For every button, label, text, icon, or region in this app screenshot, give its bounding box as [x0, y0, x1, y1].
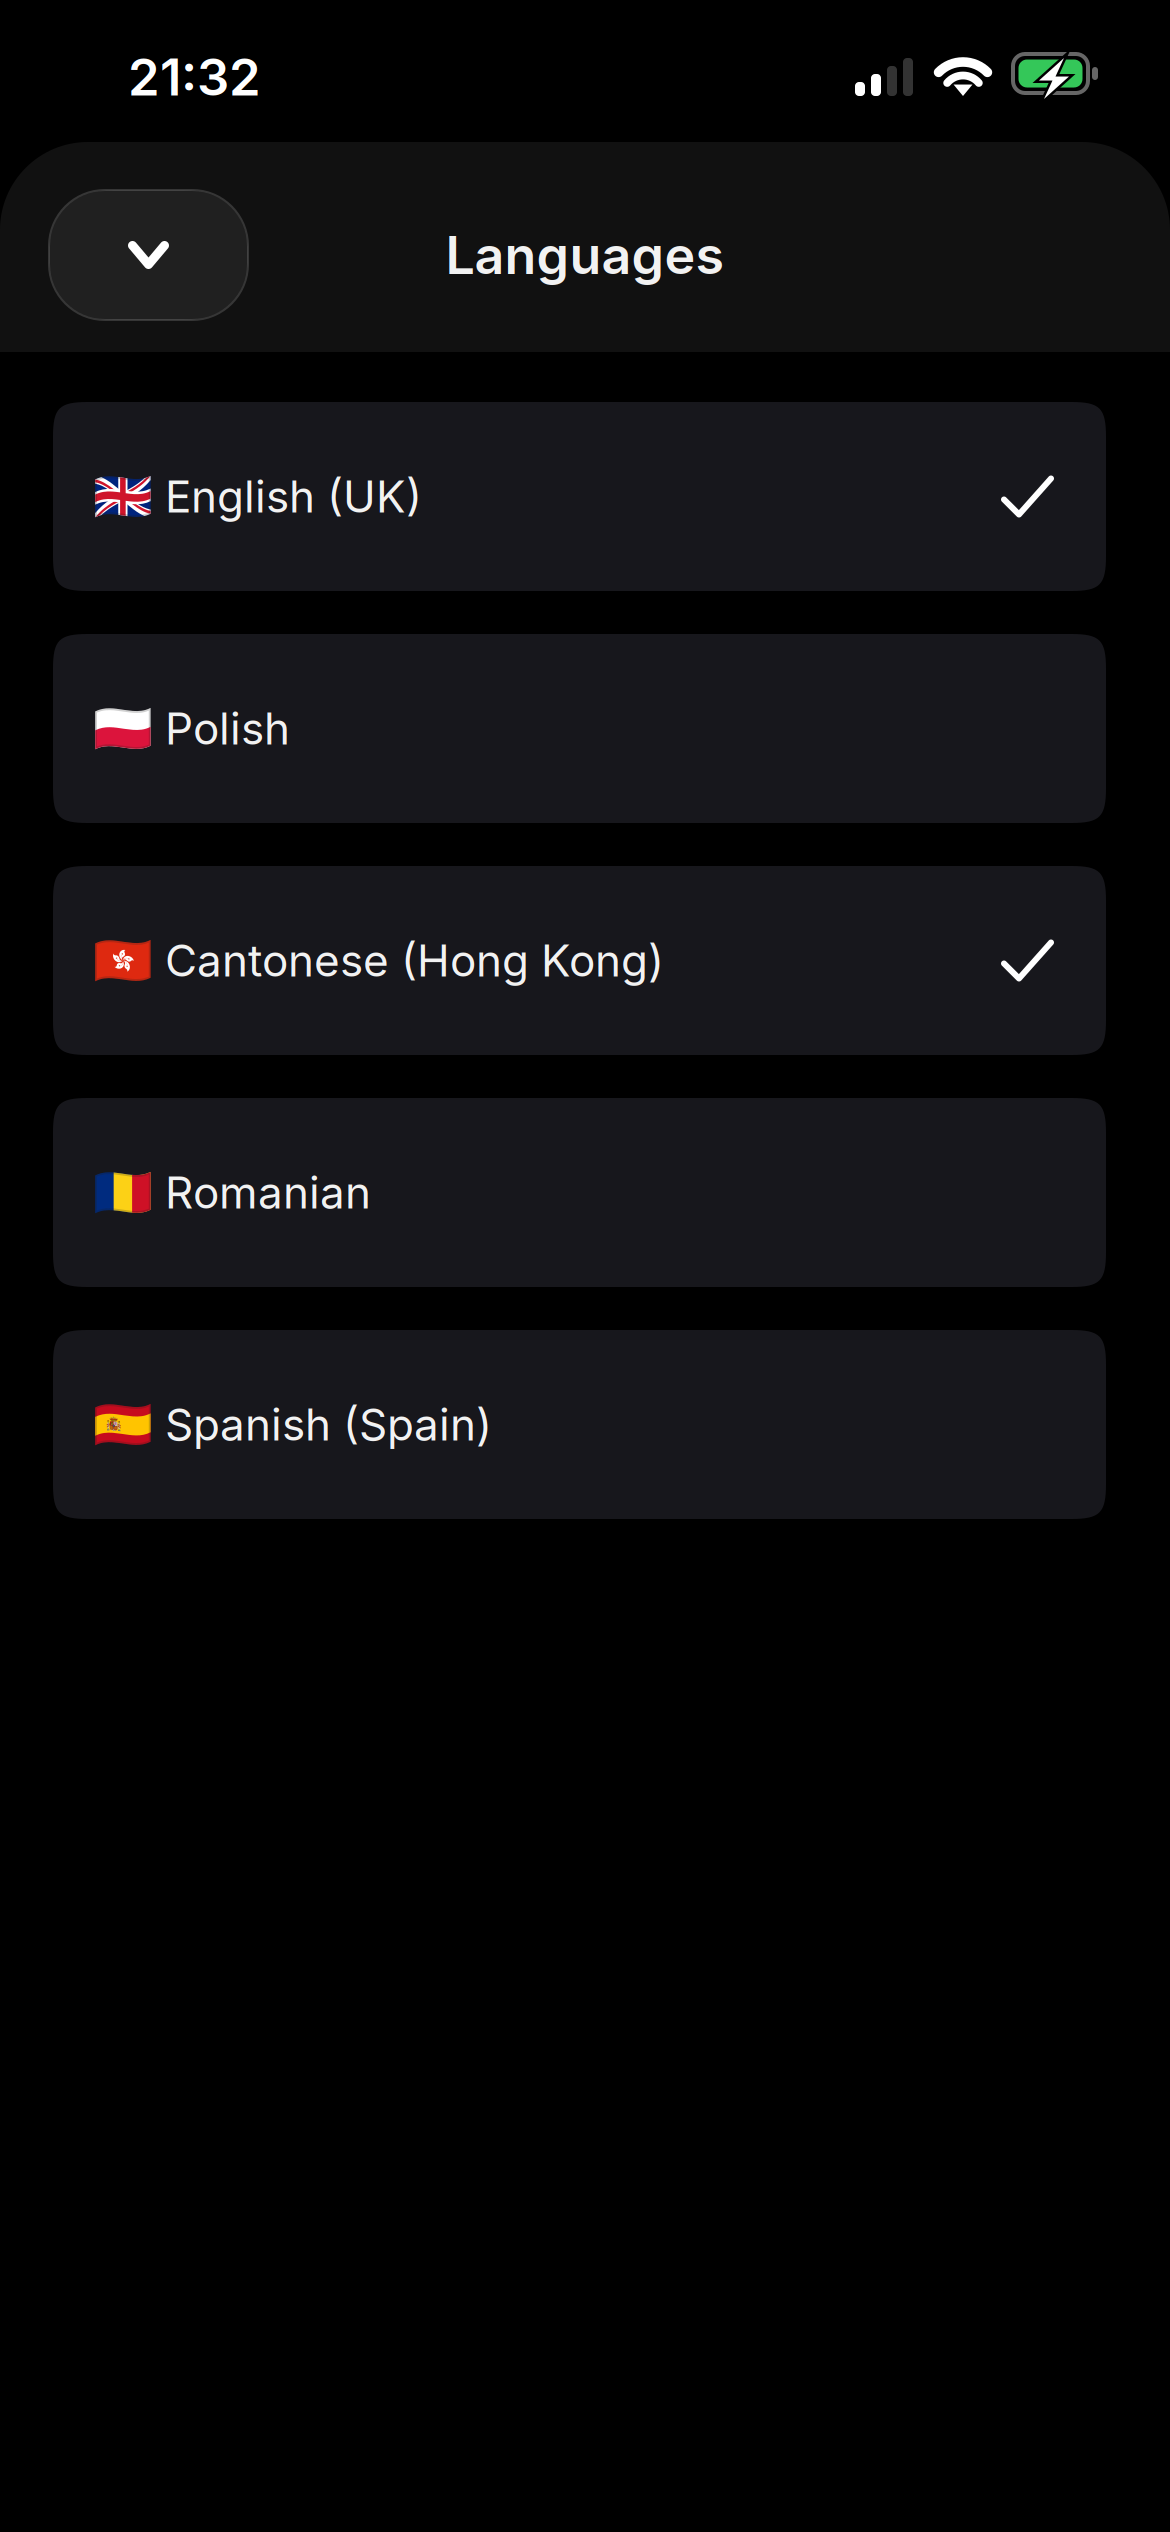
staticText: 🇬🇧 [93, 468, 153, 525]
button[interactable]: 🇷🇴 [53, 1098, 1106, 1287]
button[interactable]: 🇵🇱 [53, 634, 1106, 823]
staticText: Polish [165, 702, 290, 755]
button[interactable]: 🇪🇸 [53, 1330, 1106, 1519]
staticText: 🇪🇸 [93, 1396, 153, 1453]
staticText: 🇵🇱 [93, 700, 153, 757]
staticText: English (UK) [165, 470, 422, 523]
staticText: 🇭🇰 [93, 932, 153, 989]
staticText: Spanish (Spain) [165, 1398, 492, 1451]
staticText: Romanian [165, 1166, 371, 1219]
staticText: Cantonese (Hong Kong) [165, 934, 664, 987]
staticText: 21:32 [128, 46, 261, 108]
button[interactable]: Collapse [49, 190, 248, 320]
button[interactable]: 🇬🇧 [53, 402, 1106, 591]
staticText: Languages [445, 223, 724, 286]
button[interactable]: 🇭🇰 [53, 866, 1106, 1055]
staticText: 🇷🇴 [93, 1164, 153, 1221]
